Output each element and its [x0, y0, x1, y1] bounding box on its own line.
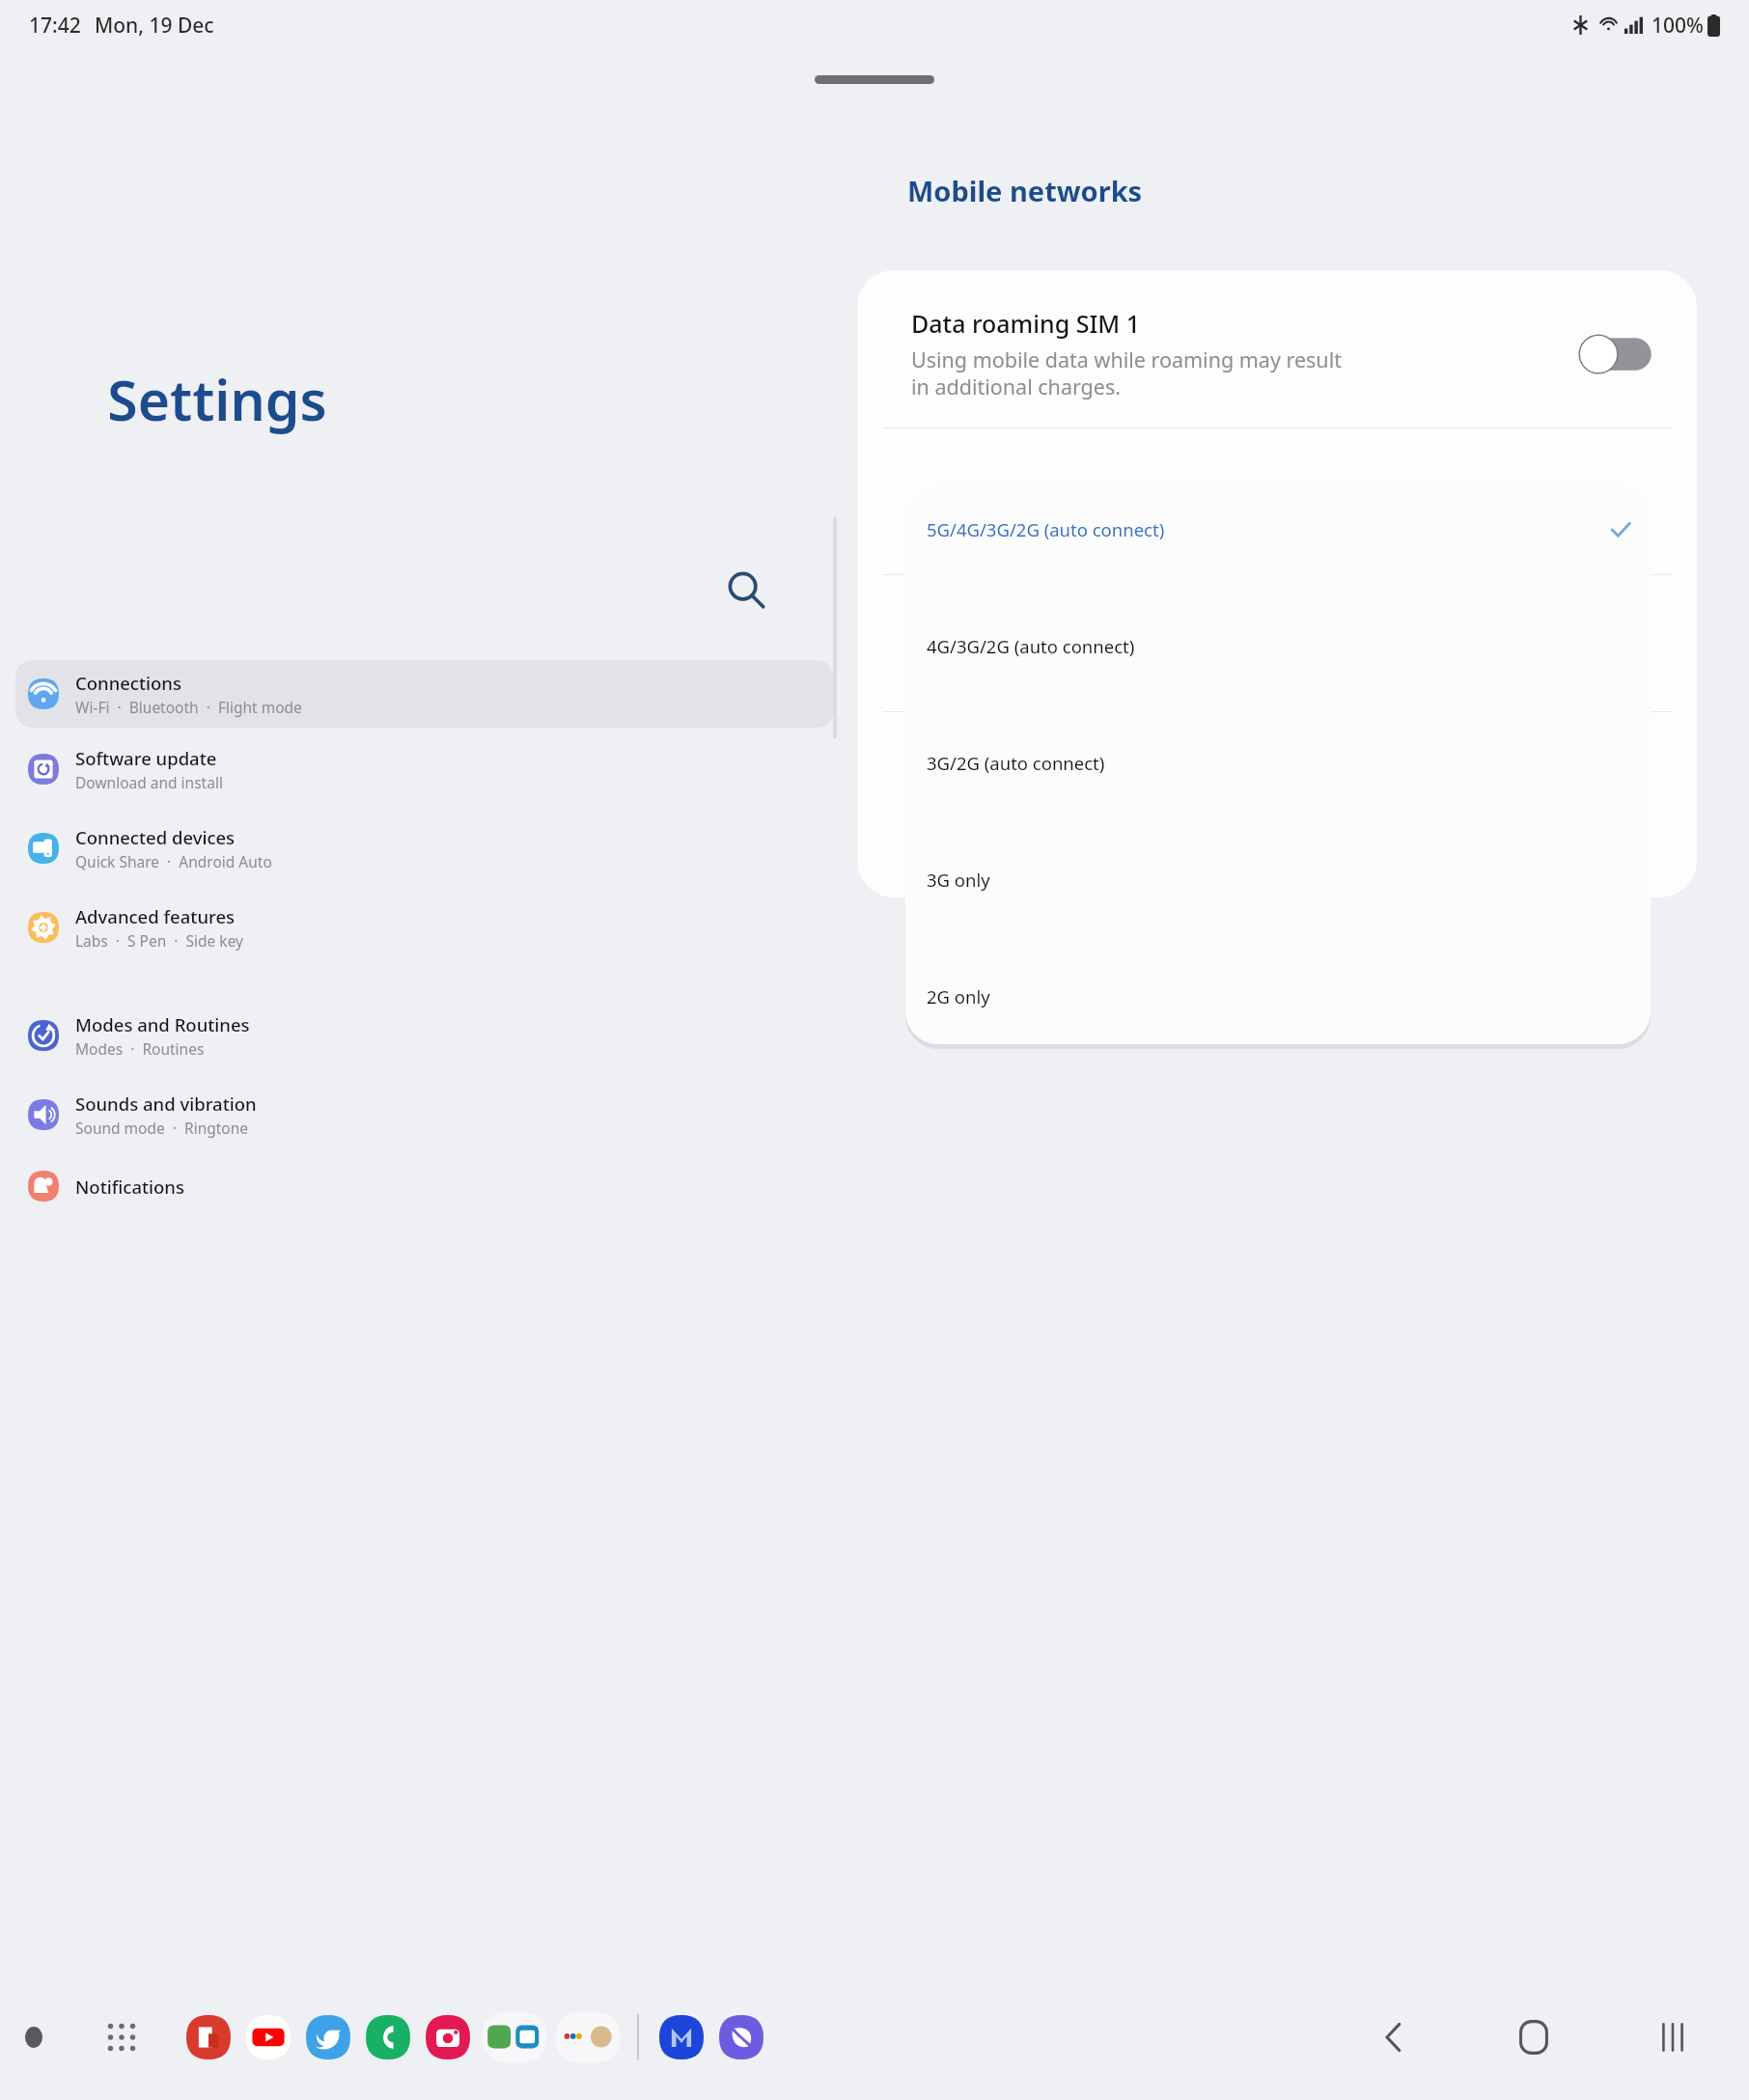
button[interactable]: 4G/3G/2G (auto connect): [905, 617, 1651, 676]
button[interactable]: Internet: [716, 2012, 766, 2062]
button[interactable]: Shopping folder: [556, 2012, 620, 2062]
staticText: Labs · S Pen · Side key: [75, 930, 243, 951]
button[interactable]: Data roaming toggle: [1577, 333, 1656, 375]
button[interactable]: Connections: [15, 660, 834, 728]
staticText: Data roaming SIM 1: [911, 307, 1141, 340]
button[interactable]: Advanced features: [15, 894, 834, 961]
button[interactable]: Folder: [483, 2012, 546, 2062]
staticText: Wi-Fi · Bluetooth · Flight mode: [75, 697, 302, 717]
button[interactable]: Back: [1351, 1994, 1438, 2081]
staticText: Modes and Routines: [75, 1012, 250, 1036]
button[interactable]: Phone: [363, 2012, 413, 2062]
staticText: 2G only: [927, 984, 990, 1009]
button[interactable]: Software update: [15, 735, 834, 803]
button[interactable]: Camera: [423, 2012, 473, 2062]
button[interactable]: Sounds and vibration: [15, 1081, 834, 1148]
button[interactable]: Twitter: [303, 2012, 353, 2062]
staticText: 5G/4G/3G/2G (auto connect): [927, 517, 1165, 541]
staticText: 17:42: [29, 12, 81, 40]
button[interactable]: 3G/2G (auto connect): [905, 733, 1651, 792]
button[interactable]: Apps: [93, 2008, 151, 2066]
staticText: Mobile networks: [907, 172, 1143, 209]
staticText: Connected devices: [75, 825, 236, 849]
button[interactable]: Home: [1490, 1994, 1577, 2081]
staticText: Mon, 19 Dec: [95, 12, 214, 40]
button[interactable]: Flipboard: [183, 2012, 234, 2062]
staticText: Quick Share · Android Auto: [75, 851, 272, 871]
button[interactable]: Recent apps: [1629, 1994, 1716, 2081]
staticText: 3G only: [927, 868, 990, 892]
button[interactable]: Search settings: [714, 558, 780, 623]
staticText: 3G/2G (auto connect): [927, 751, 1105, 775]
button[interactable]: 3G only: [905, 850, 1651, 909]
button[interactable]: YouTube: [243, 2012, 293, 2062]
button[interactable]: Notifications: [15, 1160, 834, 1212]
button[interactable]: Modes and Routines: [15, 1002, 834, 1069]
staticText: Download and install: [75, 772, 223, 792]
button[interactable]: Connected devices: [15, 815, 834, 882]
staticText: 4G/3G/2G (auto connect): [927, 634, 1135, 658]
button[interactable]: 5G/4G/3G/2G (auto connect): [905, 500, 1651, 559]
staticText: Advanced features: [75, 904, 236, 928]
staticText: Sound mode · Ringtone: [75, 1118, 249, 1138]
staticText: Connections: [75, 671, 181, 695]
staticText: Settings: [0, 362, 434, 437]
button[interactable]: Mobile app: [656, 2012, 707, 2062]
staticText: Using mobile data while roaming may resu…: [911, 345, 1342, 401]
staticText: Notifications: [75, 1174, 184, 1199]
staticText: Sounds and vibration: [75, 1091, 257, 1116]
staticText: 100%: [1652, 12, 1704, 40]
staticText: Modes · Routines: [75, 1038, 205, 1059]
staticText: Software update: [75, 746, 217, 770]
other: Selected: [1608, 517, 1633, 542]
button[interactable]: 2G only: [905, 967, 1651, 1026]
